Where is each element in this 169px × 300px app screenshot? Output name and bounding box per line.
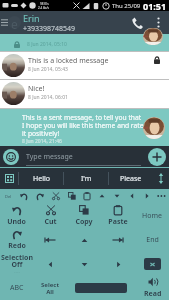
staticText: Type message xyxy=(26,152,73,162)
staticText: I'm xyxy=(81,174,92,184)
button[interactable]: I'm xyxy=(64,168,108,189)
button[interactable]: Paste xyxy=(79,189,94,203)
button[interactable]: Redo xyxy=(0,228,33,252)
staticText: Redo xyxy=(8,241,26,251)
button[interactable]: Cut xyxy=(48,189,64,203)
button[interactable]: Selection Off xyxy=(0,252,33,276)
staticText: End xyxy=(146,235,159,245)
button[interactable]: Line end xyxy=(101,228,135,252)
button[interactable]: Up xyxy=(94,189,109,203)
staticText: Paste xyxy=(108,217,128,227)
staticText: Selection Off xyxy=(1,253,33,270)
button[interactable]: More options xyxy=(149,11,167,34)
button[interactable]: Down xyxy=(109,189,124,203)
staticText: 8 Jun 2014, 06:01 xyxy=(28,94,68,101)
button[interactable]: Undo xyxy=(0,203,33,228)
staticText: 01:51 xyxy=(143,0,167,11)
button[interactable]: Attach xyxy=(148,148,166,166)
button[interactable]: More xyxy=(154,189,169,203)
staticText: e xyxy=(11,16,18,29)
button[interactable]: Call xyxy=(125,11,149,34)
button[interactable]: Right xyxy=(101,252,135,276)
button[interactable]: Type message xyxy=(26,148,141,166)
button[interactable]: Delete xyxy=(0,189,16,203)
button[interactable]: Select All xyxy=(33,276,66,300)
button[interactable]: Space xyxy=(66,276,136,300)
staticText: Nice! xyxy=(28,84,45,94)
staticText: Select All xyxy=(41,281,59,295)
button[interactable]: Right xyxy=(139,189,154,203)
staticText: 8 Jun 2014, 05:10 xyxy=(27,41,67,48)
button[interactable]: Paste xyxy=(101,203,135,228)
button[interactable]: Cut xyxy=(33,203,67,228)
staticText: Home xyxy=(142,211,162,221)
button[interactable]: Undo xyxy=(16,189,32,203)
button[interactable]: ABC xyxy=(0,276,33,300)
button[interactable]: Nice! xyxy=(0,80,169,108)
staticText: Thu 25/09 xyxy=(112,2,141,10)
button[interactable]: End xyxy=(135,228,169,252)
staticText: Please xyxy=(120,174,142,184)
staticText: This is a sent message, to tell you that… xyxy=(22,113,144,138)
button[interactable]: Navigate up xyxy=(0,11,8,34)
staticText: Erin xyxy=(23,12,40,24)
staticText: This is a locked message xyxy=(28,56,109,66)
button[interactable]: Hello xyxy=(19,168,63,189)
button[interactable]: Please xyxy=(109,168,153,189)
button[interactable]: Up xyxy=(67,228,101,252)
staticText: 8 Jun 2014, 21:46 xyxy=(22,138,62,145)
button[interactable]: Keyboard settings xyxy=(0,168,18,189)
staticText: Del xyxy=(5,194,12,199)
staticText: Cut xyxy=(44,217,57,227)
staticText: 98 K/s xyxy=(40,2,49,6)
button[interactable]: Copy xyxy=(67,203,101,228)
staticText: +393398748549 xyxy=(23,24,76,34)
staticText: Copy xyxy=(75,217,93,227)
button[interactable]: Left xyxy=(124,189,139,203)
button[interactable]: This is a sent message, to tell you that… xyxy=(0,109,169,146)
staticText: 2.4 kb/s xyxy=(38,6,50,10)
staticText: Read xyxy=(144,289,162,299)
button[interactable]: Left xyxy=(33,252,67,276)
button[interactable]: Read xyxy=(136,276,169,300)
button[interactable]: Backspace xyxy=(135,252,169,276)
button[interactable]: Redo xyxy=(32,189,48,203)
staticText: Undo xyxy=(7,217,26,227)
staticText: 8 Jun 2014, 05:43 xyxy=(28,66,68,73)
button[interactable]: Line start xyxy=(33,228,67,252)
button[interactable]: Emoji xyxy=(3,149,19,165)
button[interactable]: Copy xyxy=(64,189,79,203)
button[interactable]: Down xyxy=(67,252,101,276)
button[interactable]: Expand suggestions xyxy=(153,168,169,189)
button[interactable]: This is a locked message xyxy=(0,52,169,79)
button[interactable]: Home xyxy=(135,203,169,228)
staticText: ABC xyxy=(10,283,24,293)
button[interactable]: 8 Jun 2014, 05:10 xyxy=(0,34,169,51)
staticText: Hello xyxy=(33,174,50,184)
